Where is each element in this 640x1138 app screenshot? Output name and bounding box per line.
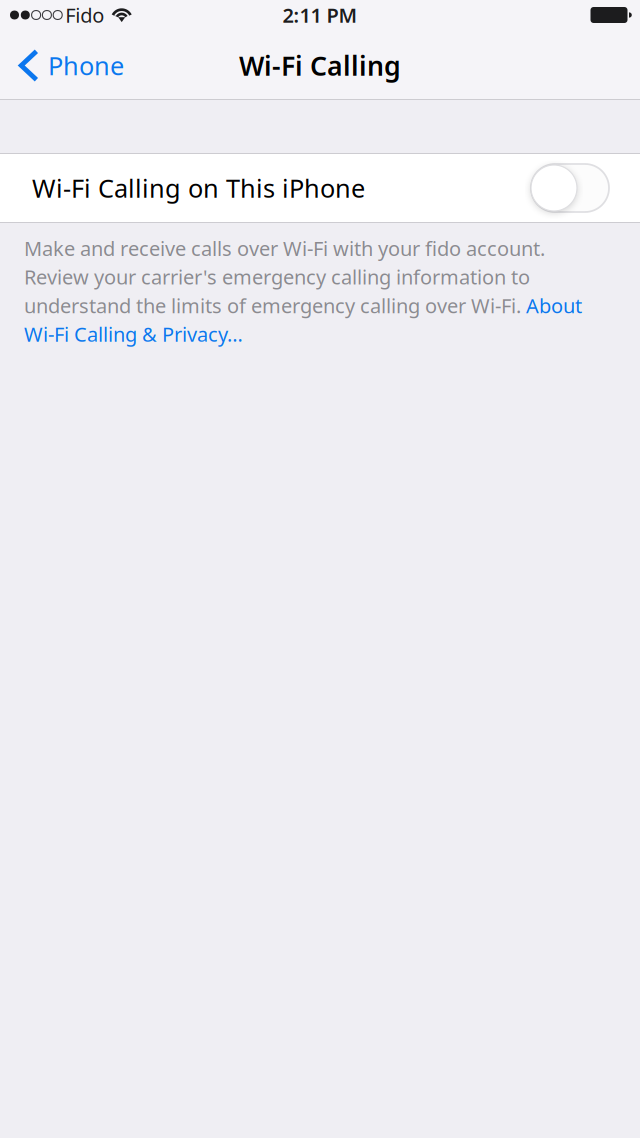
button[interactable]: About Wi-Fi Calling & Privacy [24,321,243,347]
staticText: Wi-Fi Calling [239,48,401,83]
staticText: Fido [65,2,104,28]
staticText: 2:11 PM [282,2,357,28]
staticText: About [521,292,582,319]
button[interactable]: Back to Phone [0,40,136,98]
button[interactable]: About Wi-Fi Calling & Privacy [521,292,582,319]
staticText: Phone [48,49,124,82]
staticText: Wi-Fi Calling & Privacy… [24,321,243,347]
staticText: Make and receive calls over Wi-Fi with y… [24,235,545,262]
button[interactable]: Wi-Fi Calling on This iPhone [0,154,640,222]
staticText: understand the limits of emergency calli… [24,292,521,319]
staticText: Wi-Fi Calling on This iPhone [32,171,365,205]
staticText: Review your carrier's emergency calling … [24,264,530,290]
